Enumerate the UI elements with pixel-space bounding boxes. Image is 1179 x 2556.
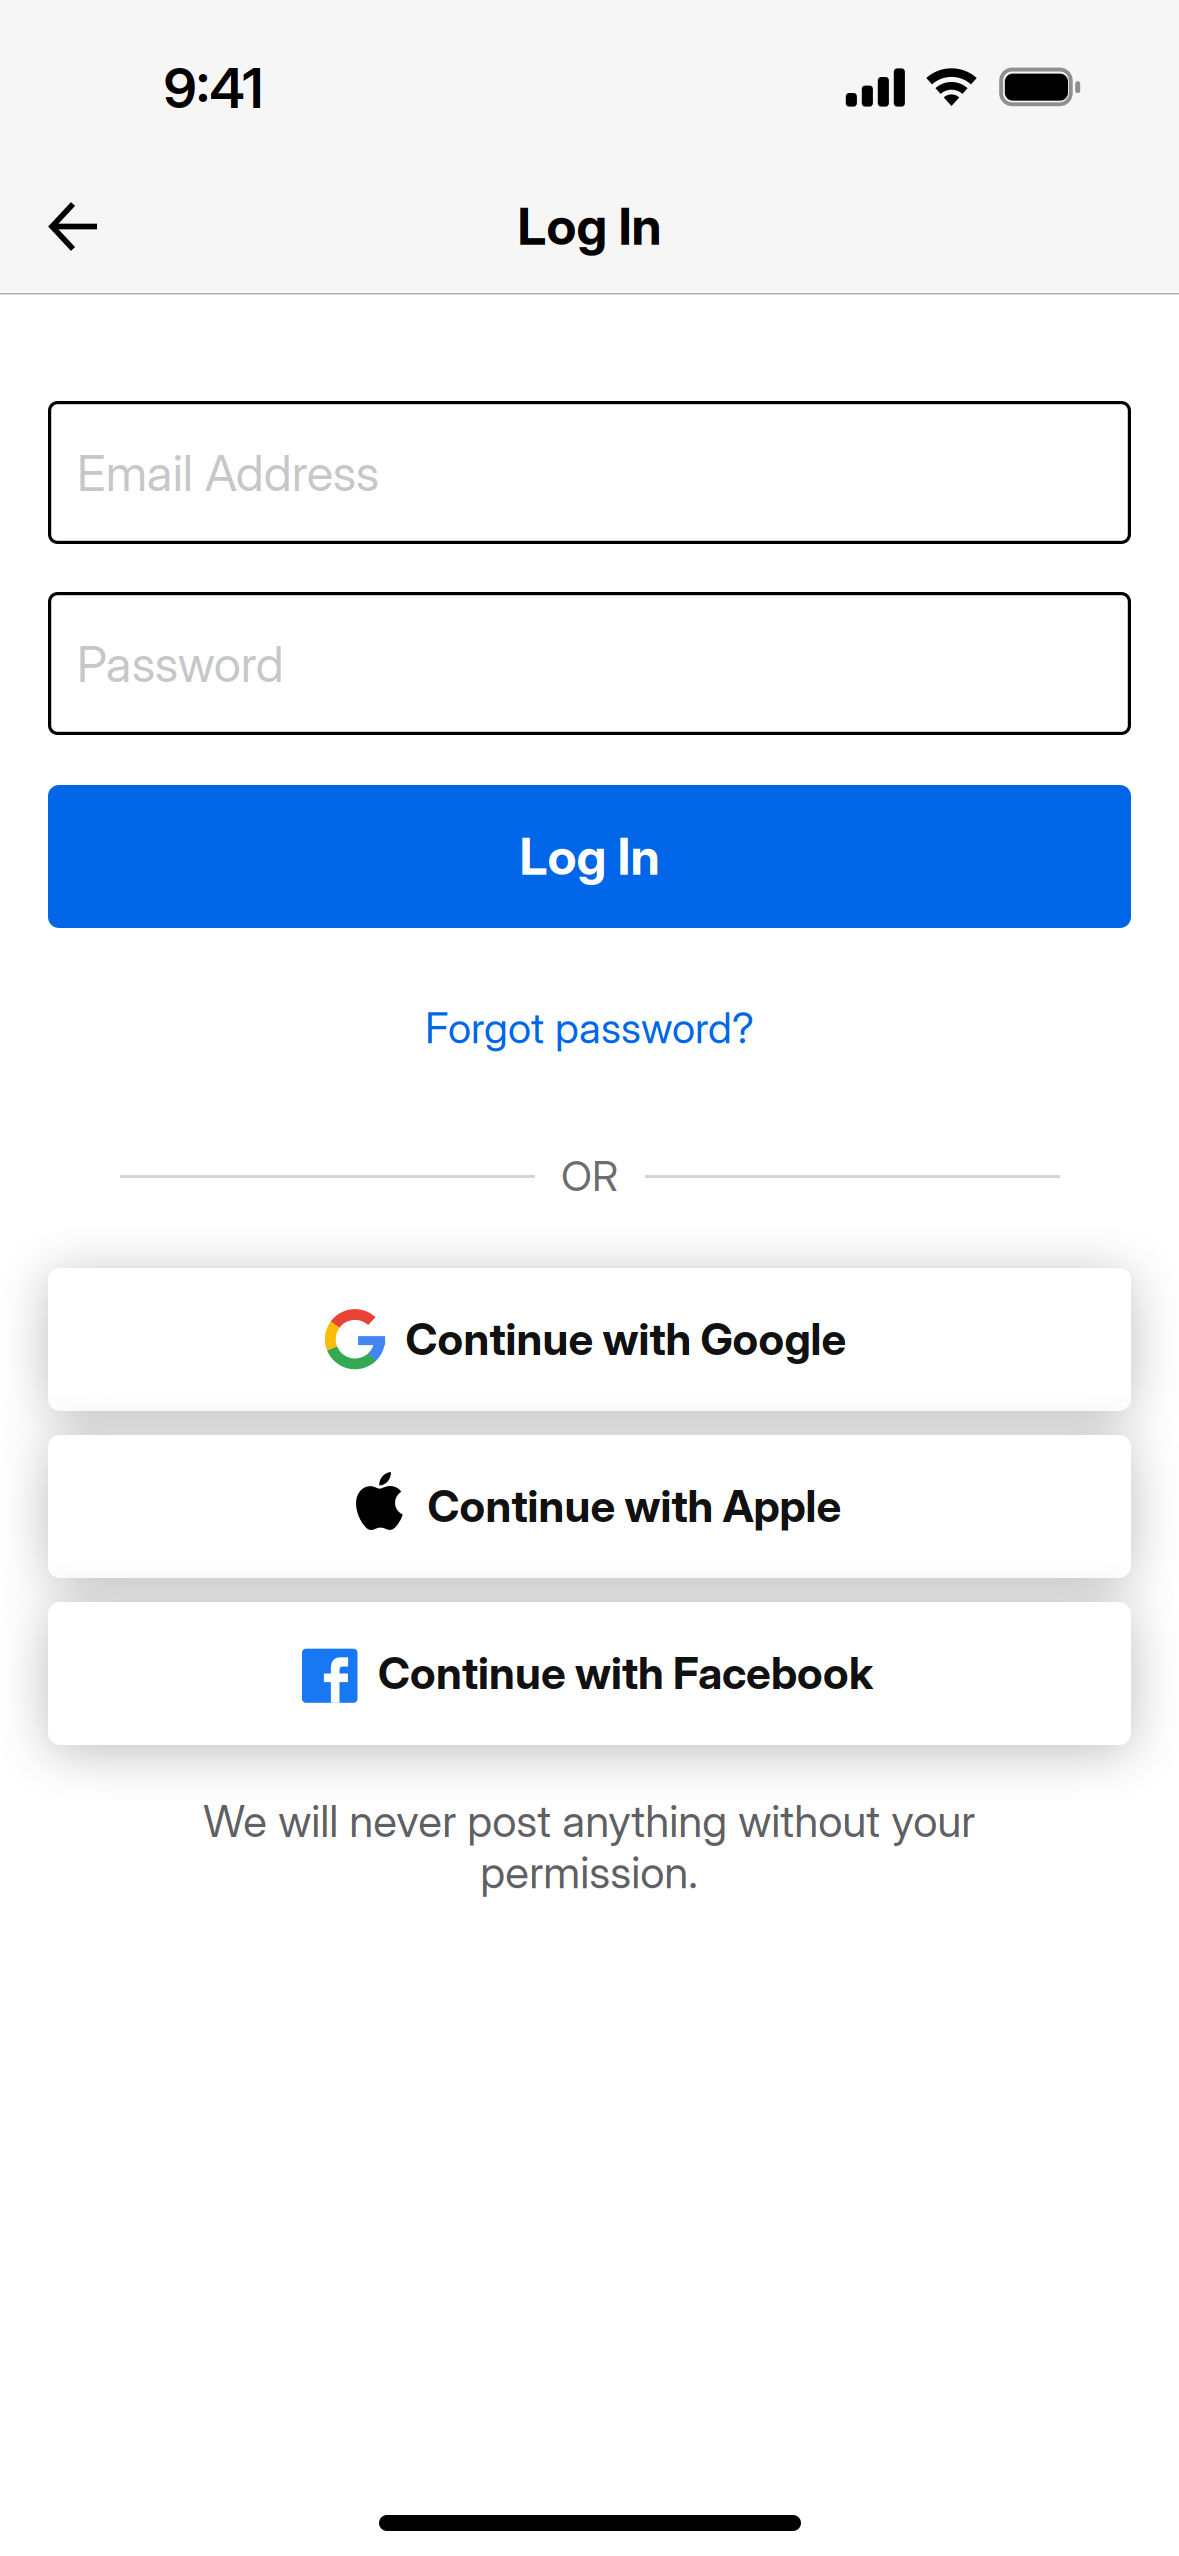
staticText: Forgot password? xyxy=(425,1003,754,1053)
button[interactable]: Continue with Apple xyxy=(48,1435,1131,1578)
staticText: We will never post anything without your… xyxy=(203,1795,975,1898)
staticText: Continue with Facebook xyxy=(378,1646,873,1700)
button[interactable]: Password xyxy=(48,592,1131,735)
staticText: Continue with Google xyxy=(405,1312,846,1366)
button[interactable]: Email Address xyxy=(48,401,1131,544)
staticText: Log In xyxy=(517,195,661,257)
staticText: Email Address xyxy=(77,443,379,503)
button[interactable]: Continue with Google xyxy=(48,1268,1131,1411)
staticText: Continue with Apple xyxy=(427,1479,841,1533)
button[interactable]: Back xyxy=(25,178,121,274)
button[interactable]: Forgot password? xyxy=(389,997,789,1059)
staticText: 9:41 xyxy=(163,55,263,121)
button[interactable]: Continue with Facebook xyxy=(48,1602,1131,1745)
button[interactable]: Log In xyxy=(48,785,1131,928)
staticText: Log In xyxy=(519,826,659,887)
staticText: Password xyxy=(77,634,284,694)
staticText: OR xyxy=(561,1151,618,1201)
